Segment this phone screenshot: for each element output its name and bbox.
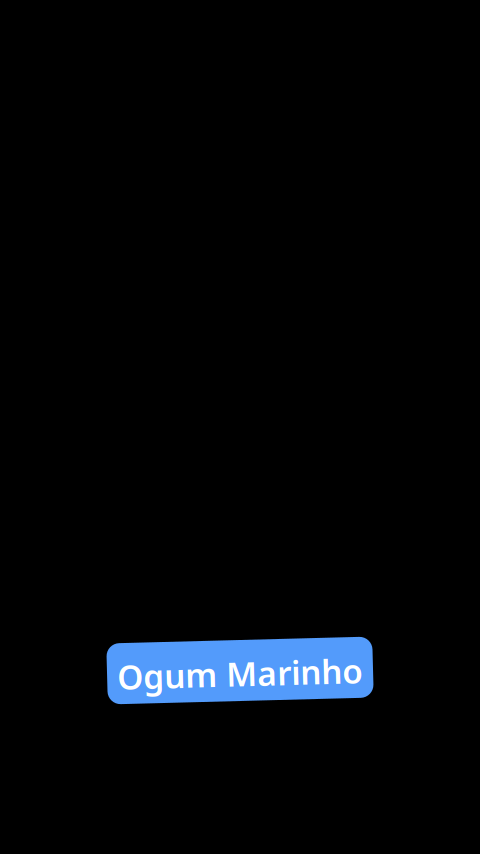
button[interactable]: Ogum Marinho [107,640,373,701]
staticText: Ogum Marinho [117,651,363,696]
